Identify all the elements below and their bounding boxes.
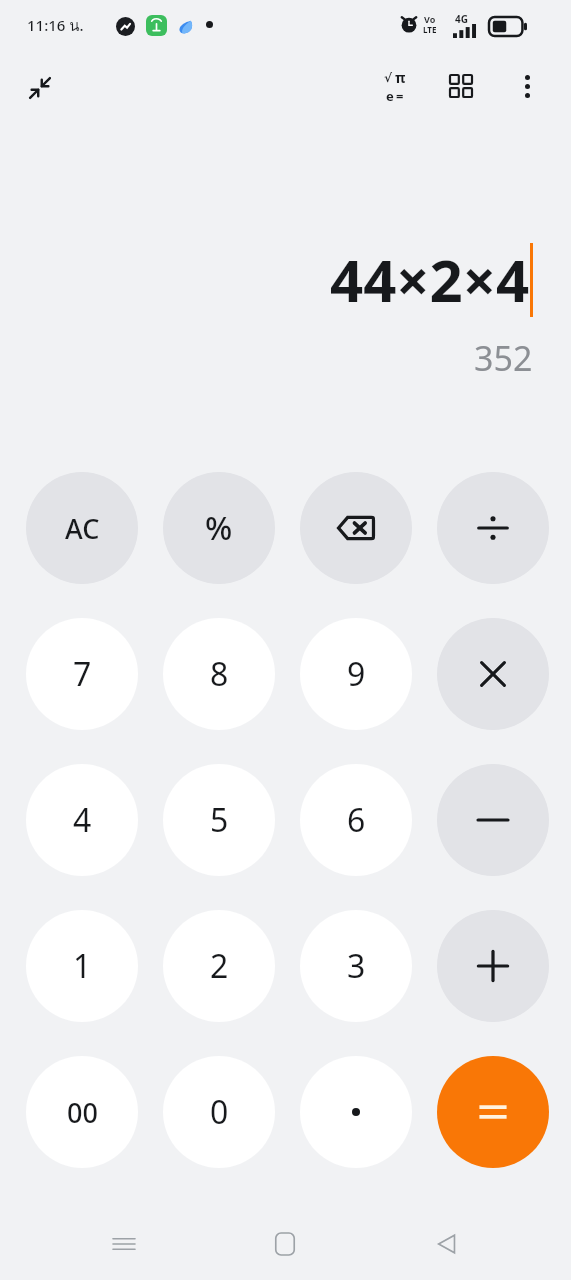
button[interactable]: 1 xyxy=(26,910,138,1022)
staticText: 6 xyxy=(347,798,366,842)
staticText: 44×2×4 xyxy=(330,240,530,319)
button[interactable] xyxy=(437,1056,549,1168)
staticText: 5 xyxy=(210,798,229,842)
staticText: 4 xyxy=(73,798,92,842)
button[interactable]: % xyxy=(163,472,275,584)
staticText: 00 xyxy=(67,1094,98,1131)
button[interactable]: 3 xyxy=(300,910,412,1022)
staticText: π xyxy=(395,68,406,87)
button[interactable]: 8 xyxy=(163,618,275,730)
staticText: AC xyxy=(65,510,100,547)
staticText: Vo xyxy=(424,13,436,25)
button[interactable]: AC xyxy=(26,472,138,584)
button[interactable]: Back xyxy=(419,1216,475,1272)
staticText: √ xyxy=(384,71,393,85)
button[interactable]: Collapse xyxy=(16,64,64,112)
button[interactable]: Scientific mode xyxy=(371,62,419,110)
button[interactable]: 6 xyxy=(300,764,412,876)
staticText: 11:16 น. xyxy=(27,14,84,38)
staticText: 8 xyxy=(210,652,229,696)
button[interactable]: 2 xyxy=(163,910,275,1022)
staticText: 0 xyxy=(210,1090,229,1134)
button[interactable] xyxy=(437,764,549,876)
button[interactable]: Recent apps xyxy=(96,1216,152,1272)
staticText: % xyxy=(205,506,233,550)
button[interactable] xyxy=(437,910,549,1022)
button[interactable]: 9 xyxy=(300,618,412,730)
button[interactable]: 4 xyxy=(26,764,138,876)
button[interactable]: 0 xyxy=(163,1056,275,1168)
staticText: e xyxy=(386,87,394,105)
button[interactable] xyxy=(300,1056,412,1168)
button[interactable]: Backspace xyxy=(300,472,412,584)
staticText: 1 xyxy=(73,944,92,988)
button[interactable]: Home xyxy=(257,1216,313,1272)
staticText: LTE xyxy=(423,24,437,35)
staticText: 9 xyxy=(347,652,366,696)
staticText: 3 xyxy=(347,944,366,988)
staticText: 4G xyxy=(455,12,468,26)
button[interactable] xyxy=(437,618,549,730)
button[interactable]: 5 xyxy=(163,764,275,876)
button[interactable]: 00 xyxy=(26,1056,138,1168)
button[interactable]: History xyxy=(437,62,485,110)
button[interactable]: More options xyxy=(503,62,551,110)
staticText: 2 xyxy=(210,944,229,988)
staticText: 7 xyxy=(73,652,92,696)
staticText: = xyxy=(396,87,404,105)
button[interactable] xyxy=(437,472,549,584)
button[interactable]: 7 xyxy=(26,618,138,730)
staticText: 352 xyxy=(474,335,533,381)
